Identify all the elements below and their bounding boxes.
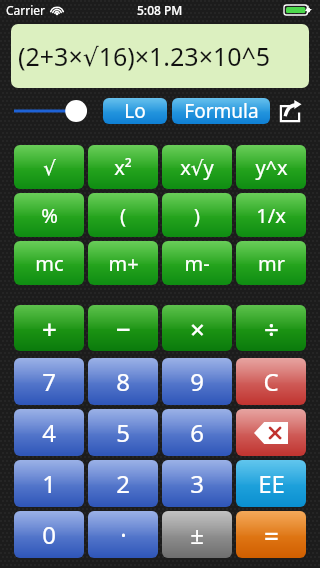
staticText: − (116, 311, 131, 346)
button[interactable]: 0 (14, 511, 84, 558)
button[interactable]: m+ (88, 241, 158, 285)
staticText: ( (120, 202, 126, 229)
button[interactable]: Lo (103, 98, 167, 124)
button[interactable]: 1 (14, 460, 84, 507)
button[interactable]: ) (162, 193, 232, 237)
staticText: mr (258, 250, 285, 277)
button[interactable]: 3 (162, 460, 232, 507)
button[interactable]: x√y (162, 145, 232, 189)
staticText: √ (43, 156, 56, 179)
staticText: 8 (116, 365, 130, 398)
button[interactable]: % (14, 193, 84, 237)
button[interactable]: 1/x (236, 193, 306, 237)
staticText: x² (114, 154, 132, 181)
button[interactable]: 2 (88, 460, 158, 507)
button[interactable]: 5 (88, 409, 158, 456)
staticText: Carrier (6, 2, 46, 18)
button[interactable]: mc (14, 241, 84, 285)
staticText: 5:08 PM (137, 2, 183, 18)
staticText: 1/x (256, 202, 286, 229)
button[interactable]: y^x (236, 145, 306, 189)
button[interactable]: Backspace (236, 409, 306, 456)
button[interactable]: − (88, 305, 158, 351)
button[interactable]: Share (277, 98, 303, 124)
staticText: 7 (42, 365, 56, 398)
staticText: ± (190, 518, 204, 551)
staticText: × (190, 311, 205, 346)
staticText: x√y (180, 154, 214, 181)
staticText: + (42, 311, 57, 346)
staticText: 0 (42, 518, 56, 551)
staticText: 6 (190, 416, 204, 449)
button[interactable]: 9 (162, 358, 232, 405)
staticText: mc (35, 250, 64, 277)
button[interactable]: 7 (14, 358, 84, 405)
staticText: = (264, 517, 279, 552)
staticText: · (120, 518, 127, 551)
button[interactable]: ÷ (236, 305, 306, 351)
staticText: ÷ (264, 311, 279, 346)
staticText: % (41, 202, 58, 229)
staticText: y^x (255, 154, 288, 181)
staticText: 4 (42, 416, 56, 449)
button[interactable]: + (14, 305, 84, 351)
staticText: C (263, 365, 279, 398)
button[interactable]: · (88, 511, 158, 558)
button[interactable]: C (236, 358, 306, 405)
button[interactable]: = (236, 511, 306, 558)
staticText: 2 (116, 467, 130, 500)
button[interactable]: ( (88, 193, 158, 237)
button[interactable]: m- (162, 241, 232, 285)
button[interactable]: mr (236, 241, 306, 285)
button[interactable]: ± (162, 511, 232, 558)
staticText: 1 (42, 467, 56, 500)
staticText: 5 (116, 416, 130, 449)
staticText: EE (258, 467, 285, 500)
button[interactable]: × (162, 305, 232, 351)
button[interactable]: x² (88, 145, 158, 189)
staticText: (2+3×√16)×1.23×10^5 (18, 39, 271, 73)
staticText: ) (194, 202, 200, 229)
staticText: 3 (190, 467, 204, 500)
staticText: 9 (190, 365, 204, 398)
button[interactable]: 6 (162, 409, 232, 456)
staticText: Formula (184, 98, 259, 124)
button[interactable]: 4 (14, 409, 84, 456)
button[interactable]: √ (14, 145, 84, 189)
staticText: m+ (108, 250, 139, 277)
button[interactable]: (2+3×√16)×1.23×10^5 (11, 24, 309, 88)
button[interactable]: Formula (172, 98, 270, 124)
button[interactable]: 8 (88, 358, 158, 405)
button[interactable]: EE (236, 460, 306, 507)
staticText: Lo (124, 98, 146, 124)
staticText: m- (184, 250, 210, 277)
